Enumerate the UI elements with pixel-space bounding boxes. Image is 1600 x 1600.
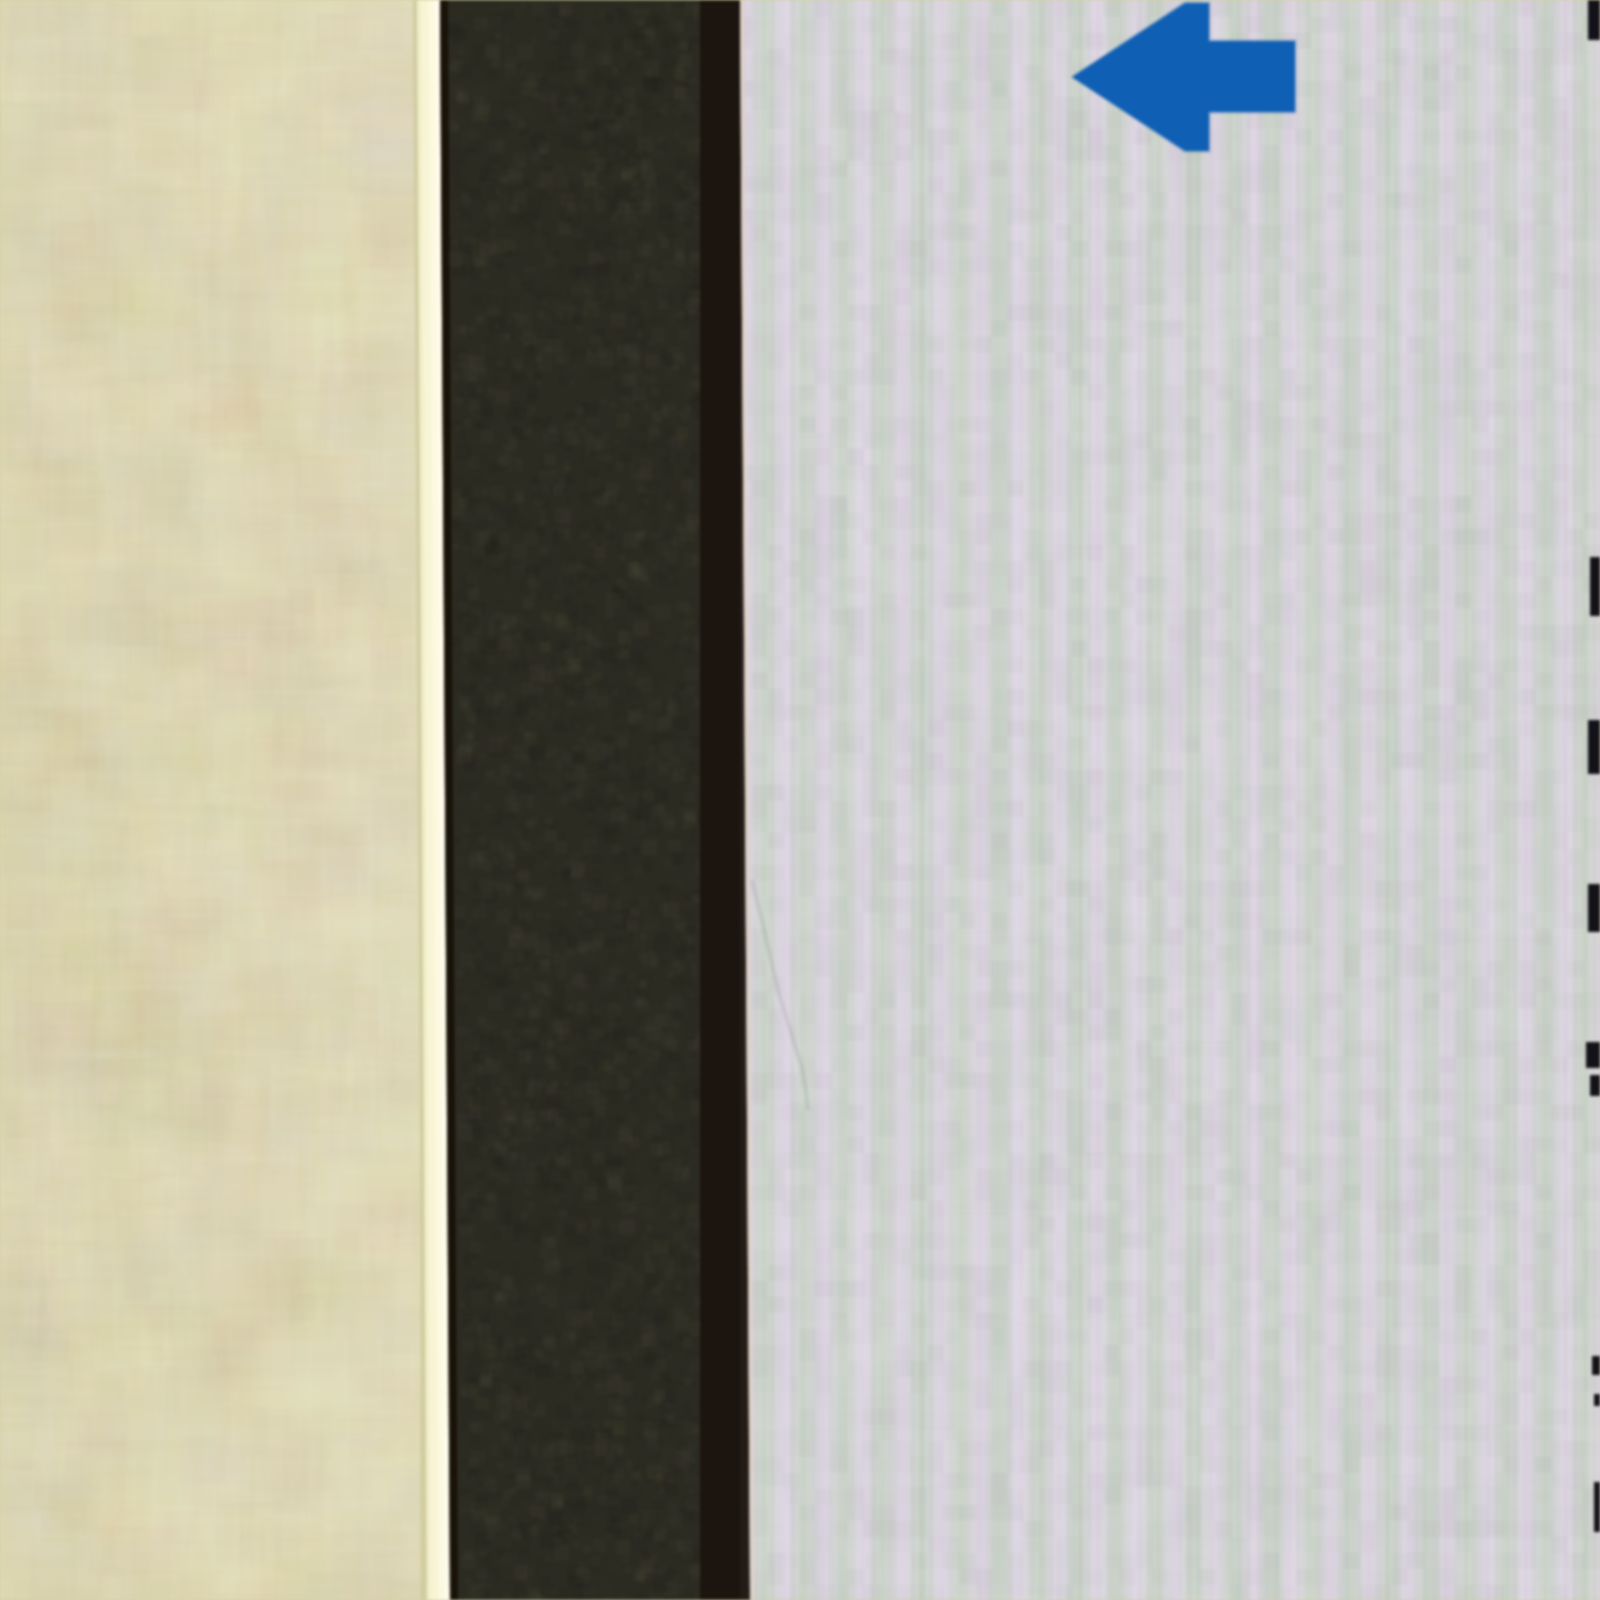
- button[interactable]: Back: [0, 0, 1600, 1600]
